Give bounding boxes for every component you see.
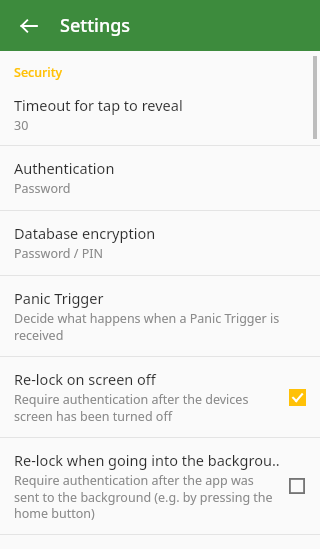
button[interactable]: Unchecked <box>288 477 306 495</box>
staticText: Require authentication after the devices… <box>14 391 280 424</box>
staticText: Password / PIN <box>14 245 103 262</box>
staticText: Authentication <box>14 158 115 178</box>
staticText: Re-lock when going into the backgrou.. <box>14 450 280 470</box>
button[interactable]: Authentication <box>0 146 320 210</box>
staticText: Timeout for tap to reveal <box>14 95 183 115</box>
staticText: Database encryption <box>14 223 156 243</box>
button[interactable]: Panic Trigger <box>0 276 320 356</box>
staticText: Panic Trigger <box>14 288 104 308</box>
button[interactable]: Timeout for tap to reveal <box>0 85 320 145</box>
staticText: Security <box>14 64 63 81</box>
button[interactable]: Re-lock when going into the backgrou.. <box>0 438 320 534</box>
button[interactable]: Database encryption <box>0 211 320 275</box>
staticText: 30 <box>14 117 29 134</box>
button[interactable]: Re-lock on screen off <box>0 357 320 437</box>
staticText: Re-lock on screen off <box>14 369 156 389</box>
staticText: Password <box>14 180 71 197</box>
button[interactable]: Back <box>12 9 46 43</box>
button[interactable]: Checked <box>288 388 306 406</box>
staticText: Decide what happens when a Panic Trigger… <box>14 310 310 343</box>
staticText: Require authentication after the app was… <box>14 472 280 521</box>
staticText: Settings <box>60 13 131 38</box>
